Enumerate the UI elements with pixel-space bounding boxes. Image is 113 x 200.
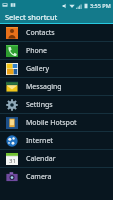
- staticText: Calendar: [26, 154, 56, 164]
- button[interactable]: Settings: [0, 96, 113, 113]
- staticText: Settings: [26, 100, 53, 110]
- button[interactable]: Messaging: [0, 78, 113, 95]
- staticText: Select shortcut: [5, 12, 58, 22]
- staticText: Contacts: [26, 28, 55, 38]
- staticText: Gallery: [26, 64, 50, 74]
- staticText: 31: [9, 157, 16, 165]
- staticText: Messaging: [26, 82, 62, 92]
- staticText: 3:55 PM: [90, 2, 111, 9]
- staticText: Phone: [26, 46, 48, 56]
- button[interactable]: Camera: [0, 168, 113, 185]
- button[interactable]: 31: [0, 150, 113, 167]
- button[interactable]: Internet: [0, 132, 113, 149]
- staticText: Camera: [26, 172, 52, 182]
- button[interactable]: Mobile Hotspot: [0, 114, 113, 131]
- button[interactable]: Gallery: [0, 60, 113, 77]
- staticText: Internet: [26, 136, 53, 146]
- button[interactable]: Phone: [0, 42, 113, 59]
- button[interactable]: Contacts: [0, 24, 113, 41]
- staticText: Mobile Hotspot: [26, 118, 77, 128]
